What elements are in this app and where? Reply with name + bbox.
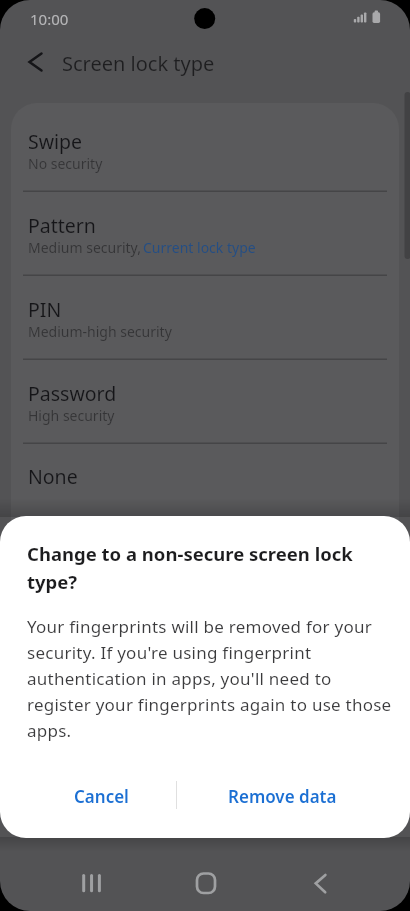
button[interactable] [11,188,399,272]
staticText: PIN [28,296,62,323]
staticText: None [28,463,78,490]
button[interactable] [11,356,399,440]
staticText: Medium-high security [28,322,172,341]
staticText: 10:00 [30,9,69,29]
button[interactable] [11,104,399,188]
staticText: Screen lock type [62,50,215,77]
button[interactable]: Remove data [218,774,346,818]
staticText: Swipe [28,128,83,155]
staticText: Pattern [28,212,96,239]
button[interactable] [183,858,229,904]
button[interactable] [18,42,58,82]
staticText: Current lock type [143,238,256,257]
staticText: Password [28,380,117,407]
button[interactable] [60,858,106,904]
staticText: Change to a non-secure screen lock type? [27,541,353,594]
staticText: High security [28,406,115,425]
staticText: Remove data [228,785,337,808]
staticText: Your fingerprints will be removed for yo… [27,615,392,742]
staticText: No security [28,154,103,173]
button[interactable]: Cancel [52,774,152,818]
staticText: Medium security, [28,238,145,257]
staticText: Cancel [74,785,129,808]
button[interactable] [298,858,344,904]
button[interactable] [11,272,399,356]
